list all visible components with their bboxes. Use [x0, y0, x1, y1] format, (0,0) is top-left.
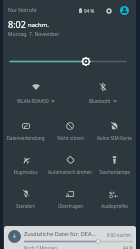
staticText: Taschenlampe [99, 169, 130, 175]
staticText: Flugmodus [13, 169, 38, 175]
staticText: 94 % [84, 8, 95, 14]
button[interactable]: Audioprofile [92, 177, 136, 211]
staticText: Audioprofile [101, 203, 128, 209]
staticText: 44 % [123, 245, 133, 249]
staticText: Bluetooth [89, 98, 111, 104]
staticText: Nicht stören [57, 135, 84, 141]
button[interactable]: Bluetooth [69, 71, 136, 109]
button[interactable]: Standort [3, 177, 48, 211]
button[interactable]: Flugmodus [3, 143, 48, 177]
staticText: Datenverbindung [6, 135, 45, 141]
staticText: 8:00 nachm. [107, 232, 133, 238]
button[interactable]: Nutzer [119, 5, 130, 16]
staticText: Noch 3 Minuten [24, 245, 123, 249]
staticText: Automatisch drehen [48, 169, 92, 175]
button[interactable]: Datenverbindung [3, 109, 48, 143]
staticText: Nur Notrufe [8, 7, 37, 14]
button[interactable]: Nicht stören [48, 109, 92, 143]
staticText: Standort [16, 203, 35, 209]
button[interactable]: Keine SIM-Karte [92, 109, 136, 143]
button[interactable]: Helligkeit [10, 55, 126, 68]
staticText: Übertragen [58, 203, 83, 209]
button[interactable]: Einstellungen [103, 5, 114, 16]
staticText: nachm. [28, 21, 49, 29]
staticText: WLAN-9DAA50 [17, 98, 49, 104]
button[interactable]: Taschenlampe [92, 143, 136, 177]
staticText: Keine SIM-Karte [97, 135, 132, 141]
staticText: 8:02 [8, 18, 26, 30]
button[interactable]: Zusätzliche Datei für: DEA... [4, 226, 136, 249]
staticText: Montag, 7. November [8, 31, 60, 38]
button[interactable]: WLAN-9DAA50 [3, 71, 69, 109]
button[interactable]: Übertragen [48, 177, 92, 211]
staticText: Zusätzliche Datei für: DEA... [24, 230, 107, 238]
button[interactable]: Automatisch drehen [48, 143, 92, 177]
